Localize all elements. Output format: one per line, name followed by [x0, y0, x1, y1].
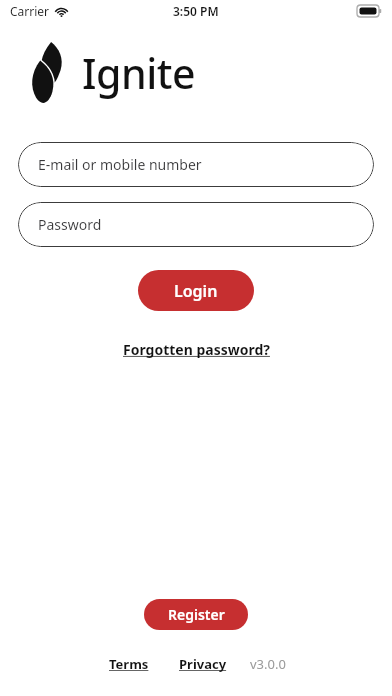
staticText: 3:50 PM: [173, 3, 219, 19]
staticText: Ignite: [82, 45, 195, 101]
button[interactable]: E-mail or mobile number: [18, 142, 374, 187]
staticText: E-mail or mobile number: [38, 155, 202, 174]
staticText: Privacy: [179, 655, 227, 673]
staticText: v3.0.0: [250, 655, 286, 673]
staticText: Carrier: [10, 3, 50, 19]
staticText: Login: [174, 280, 218, 302]
staticText: Terms: [109, 655, 149, 673]
button[interactable]: Terms: [106, 652, 152, 676]
button[interactable]: Login: [138, 270, 254, 311]
staticText: Register: [168, 605, 225, 624]
staticText: Forgotten password?: [123, 340, 270, 359]
button[interactable]: Forgotten password?: [117, 336, 276, 363]
button[interactable]: Password: [18, 202, 374, 247]
button[interactable]: Register: [144, 599, 248, 630]
button[interactable]: Privacy: [176, 652, 230, 676]
staticText: Password: [38, 215, 102, 234]
